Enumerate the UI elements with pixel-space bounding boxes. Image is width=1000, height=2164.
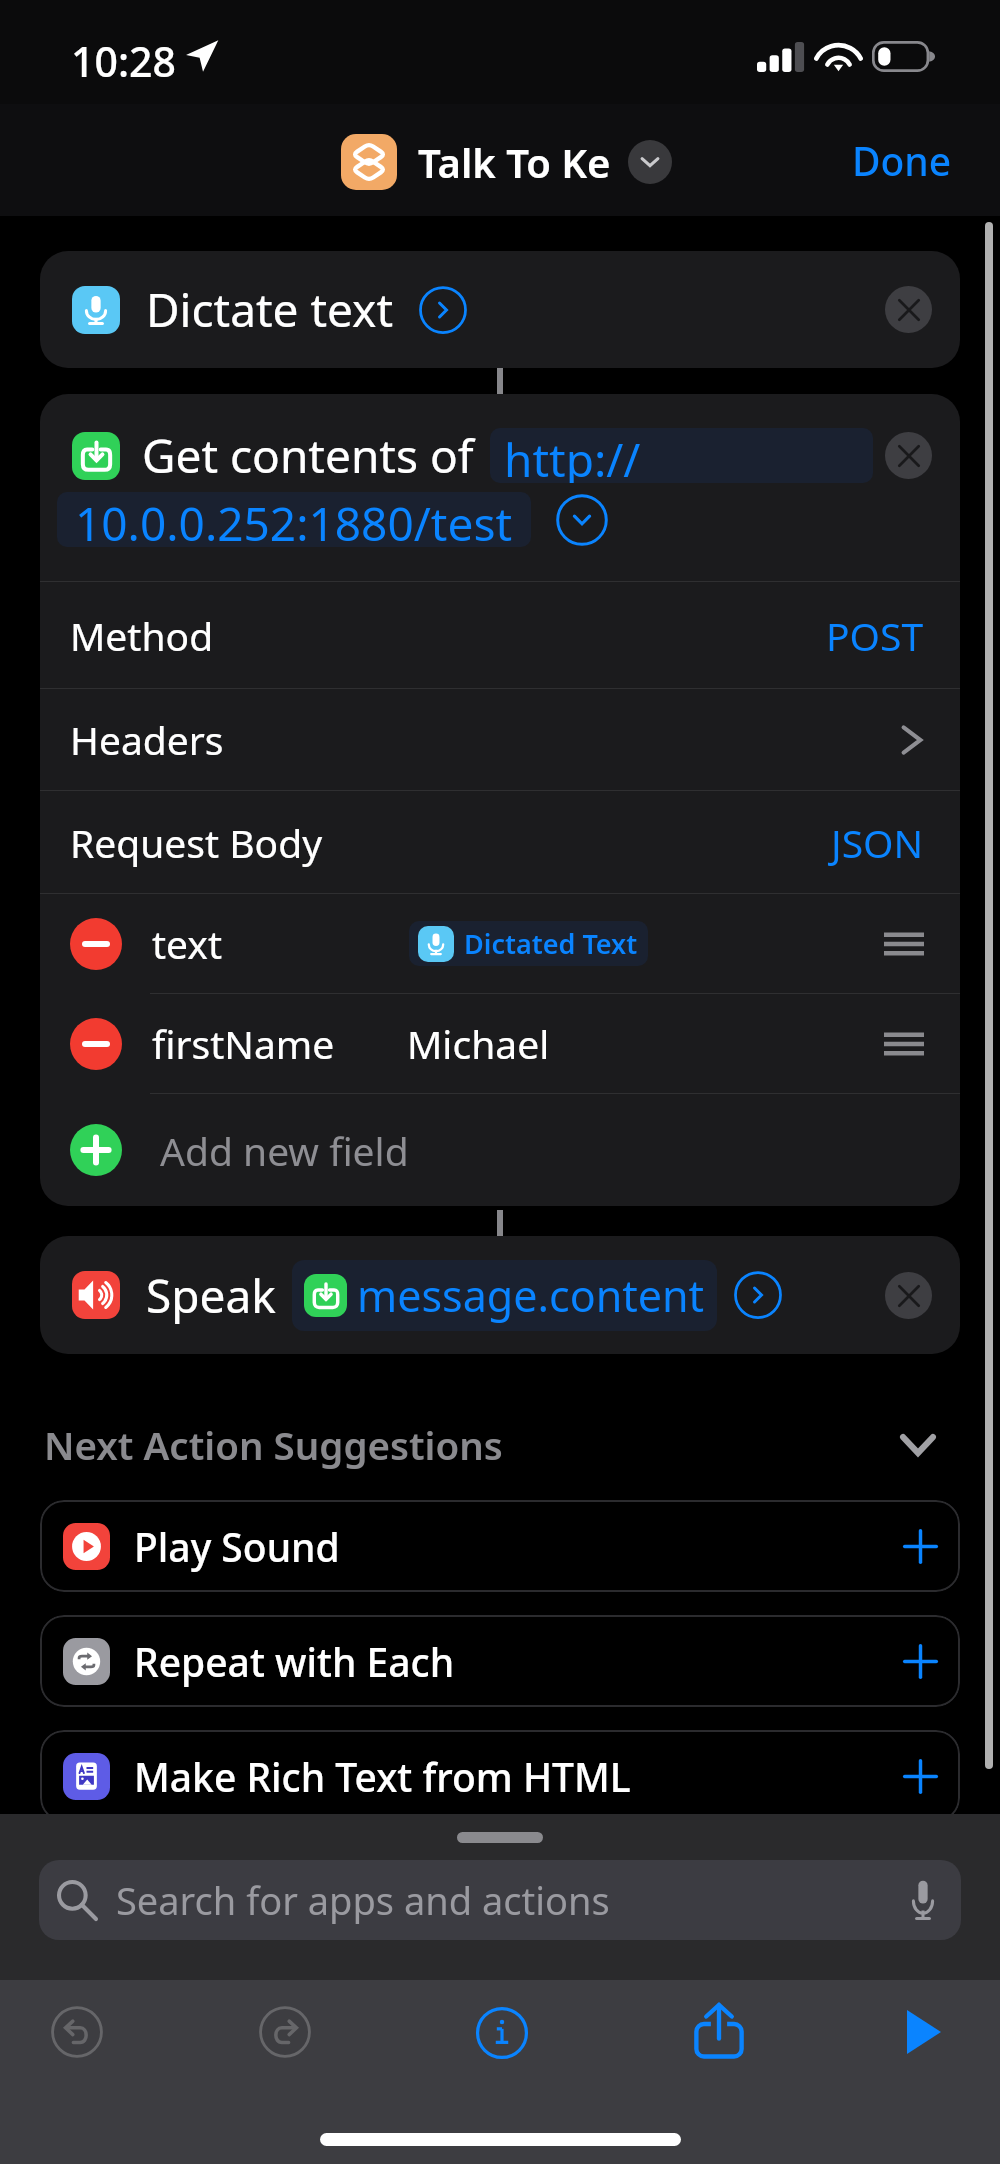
button[interactable]: Next Action Suggestions [44, 1413, 936, 1477]
staticText: Michael [407, 1017, 550, 1070]
staticText: Next Action Suggestions [44, 1419, 503, 1471]
button[interactable]: Play Sound [40, 1500, 960, 1592]
staticText: http:// [504, 428, 641, 483]
button[interactable]: Remove action [885, 432, 932, 479]
button[interactable]: Done [852, 134, 952, 187]
button[interactable]: Undo [35, 1990, 119, 2074]
staticText: Repeat with Each [134, 1635, 455, 1688]
button[interactable]: Delete field [40, 894, 960, 993]
button[interactable]: Delete field [70, 918, 122, 970]
button[interactable]: Share [677, 1989, 761, 2073]
button[interactable]: Delete field [70, 1018, 122, 1070]
staticText: message.content [357, 1266, 705, 1325]
button[interactable]: Speak [40, 1236, 960, 1354]
button[interactable]: Search for apps and actions [39, 1860, 961, 1940]
button[interactable]: Run [880, 1990, 964, 2074]
button[interactable]: Open details [733, 1270, 783, 1320]
button[interactable]: Remove action [885, 1272, 932, 1319]
staticText: 10:28 [71, 33, 176, 89]
staticText: Dictated Text [464, 925, 638, 962]
button[interactable]: Method [40, 582, 960, 688]
staticText: firstName [152, 1017, 335, 1070]
staticText: text [152, 917, 223, 970]
button[interactable]: Expand [555, 493, 609, 547]
button[interactable]: Add new field [40, 1094, 960, 1206]
staticText: Get contents of [142, 424, 474, 487]
staticText: Request Body [70, 816, 323, 869]
staticText: Speak [146, 1264, 276, 1327]
staticText: JSON [831, 816, 924, 869]
staticText: Dictate text [146, 278, 394, 341]
staticText: Search for apps and actions [116, 1874, 610, 1926]
button[interactable]: Remove action [885, 286, 932, 333]
staticText: Play Sound [134, 1520, 340, 1573]
button[interactable]: Make Rich Text from HTML [40, 1730, 960, 1822]
button[interactable]: Delete field [40, 994, 960, 1093]
staticText: POST [826, 609, 924, 662]
staticText: Add new field [160, 1124, 409, 1177]
button[interactable]: Open details [418, 285, 468, 335]
button[interactable]: Dictate text [40, 251, 960, 368]
button[interactable]: Get contents of [40, 394, 960, 581]
button[interactable]: Show more [628, 140, 672, 184]
staticText: Talk To Ke [418, 135, 611, 189]
button[interactable]: Info [460, 1991, 544, 2075]
button[interactable]: Redo [243, 1990, 327, 2074]
staticText: Headers [70, 713, 224, 766]
button[interactable]: Headers [40, 689, 960, 790]
staticText: Method [70, 609, 214, 662]
staticText: Make Rich Text from HTML [134, 1750, 631, 1803]
button[interactable]: Repeat with Each [40, 1615, 960, 1707]
staticText: Done [852, 134, 952, 187]
staticText: 10.0.0.252:1880/test [75, 492, 513, 547]
button[interactable]: Request Body [40, 791, 960, 893]
